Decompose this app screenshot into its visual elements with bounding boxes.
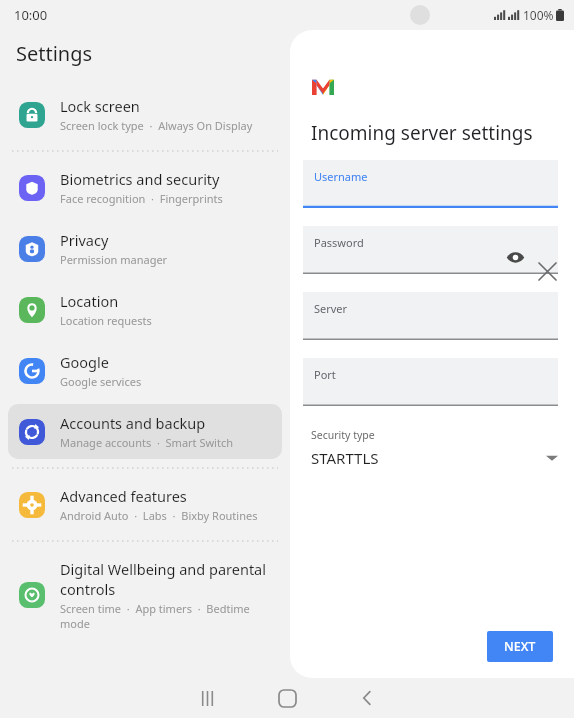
button[interactable]: Username xyxy=(303,160,558,208)
staticText: Settings xyxy=(16,40,93,67)
button[interactable]: Accounts and backup xyxy=(8,404,282,459)
staticText: Permission manager xyxy=(60,252,168,267)
staticText: Location xyxy=(60,291,119,311)
button[interactable]: Biometrics and security xyxy=(8,160,282,215)
button[interactable]: Back xyxy=(327,678,407,718)
staticText: Face recognition · Fingerprints xyxy=(60,191,223,206)
button[interactable]: Port xyxy=(303,358,558,406)
staticText: Screen lock type · Always On Display xyxy=(60,118,253,133)
staticText: 10:00 xyxy=(14,6,48,24)
staticText: Digital Wellbeing and parental controls xyxy=(60,559,270,599)
staticText: 100% xyxy=(523,7,554,23)
button[interactable]: Advanced features xyxy=(8,477,282,532)
staticText: Manage accounts · Smart Switch xyxy=(60,435,233,450)
button[interactable]: STARTTLS xyxy=(308,442,558,474)
button[interactable]: Password xyxy=(303,226,558,274)
staticText: Username xyxy=(314,169,368,184)
staticText: Port xyxy=(314,367,336,382)
button[interactable]: Lock screen xyxy=(8,87,282,142)
staticText: Biometrics and security xyxy=(60,169,220,189)
button[interactable]: NEXT xyxy=(487,631,553,662)
staticText: Google services xyxy=(60,374,142,389)
button[interactable]: Location xyxy=(8,282,282,337)
staticText: Advanced features xyxy=(60,486,187,506)
staticText: Incoming server settings xyxy=(311,120,533,146)
button[interactable]: Show password xyxy=(500,242,530,272)
staticText: NEXT xyxy=(504,638,536,655)
staticText: STARTTLS xyxy=(311,448,379,468)
staticText: Privacy xyxy=(60,230,109,250)
staticText: Screen time · App timers · Bedtime mode xyxy=(60,601,274,631)
staticText: Server xyxy=(314,301,348,316)
staticText: Android Auto · Labs · Bixby Routines xyxy=(60,508,258,523)
staticText: Password xyxy=(314,235,364,250)
button[interactable]: Recents xyxy=(167,678,247,718)
button[interactable]: Home xyxy=(247,678,327,718)
staticText: Location requests xyxy=(60,313,152,328)
button[interactable]: Digital Wellbeing and parental controls xyxy=(8,550,282,640)
button[interactable]: Privacy xyxy=(8,221,282,276)
button[interactable]: Server xyxy=(303,292,558,340)
staticText: Lock screen xyxy=(60,96,140,116)
staticText: Accounts and backup xyxy=(60,413,206,433)
button[interactable]: Google xyxy=(8,343,282,398)
staticText: Google xyxy=(60,352,109,372)
staticText: Security type xyxy=(311,428,375,442)
button[interactable]: Clear xyxy=(532,256,562,286)
